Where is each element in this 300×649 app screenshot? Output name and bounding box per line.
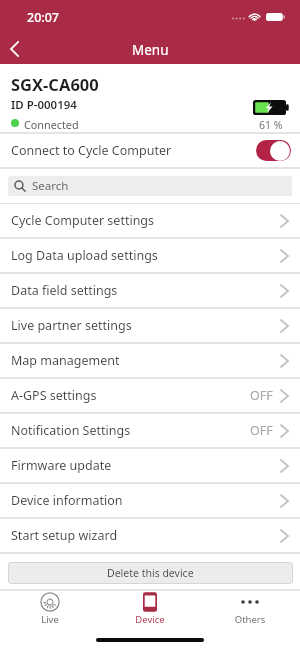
button[interactable]: A-GPS settings <box>0 379 300 412</box>
button[interactable]: Back <box>0 30 32 64</box>
button[interactable]: Live partner settings <box>0 309 300 342</box>
button[interactable]: Device <box>105 590 195 630</box>
staticText: Live partner settings <box>11 317 132 334</box>
staticText: Connect to Cycle Computer <box>11 142 172 159</box>
button[interactable]: Firmware update <box>0 449 300 482</box>
button[interactable]: Live <box>5 590 95 630</box>
staticText: Search <box>32 178 69 194</box>
staticText: Menu <box>132 41 169 59</box>
button[interactable]: Data field settings <box>0 274 300 307</box>
button[interactable]: Others <box>205 590 295 630</box>
staticText: Log Data upload settings <box>11 247 158 264</box>
staticText: Cycle Computer settings <box>11 212 155 229</box>
staticText: ID P-000194 <box>11 97 77 113</box>
staticText: SGX-CA600 <box>11 73 99 95</box>
button[interactable]: Cycle Computer settings <box>0 204 300 237</box>
button[interactable]: Search <box>8 176 292 196</box>
button[interactable]: Map management <box>0 344 300 377</box>
button[interactable]: Notification Settings <box>0 414 300 447</box>
staticText: Connected <box>24 117 79 132</box>
staticText: 61 % <box>259 118 283 132</box>
button[interactable]: Log Data upload settings <box>0 239 300 272</box>
staticText: A-GPS settings <box>11 387 97 404</box>
staticText: OFF <box>250 422 273 439</box>
staticText: Device <box>105 613 195 626</box>
button[interactable]: Connect to Cycle Computer <box>0 133 300 167</box>
button[interactable]: Delete this device <box>8 562 293 584</box>
button[interactable]: Device information <box>0 484 300 517</box>
staticText: Notification Settings <box>11 422 131 439</box>
staticText: Device information <box>11 492 123 509</box>
staticText: Delete this device <box>107 566 194 580</box>
staticText: Data field settings <box>11 282 118 299</box>
button[interactable]: Start setup wizard <box>0 519 300 552</box>
staticText: Firmware update <box>11 457 112 474</box>
staticText: Live <box>5 613 95 626</box>
staticText: Map management <box>11 352 120 369</box>
staticText: OFF <box>250 387 273 404</box>
staticText: 20:07 <box>27 9 60 26</box>
staticText: Others <box>205 613 295 626</box>
staticText: Start setup wizard <box>11 527 118 544</box>
